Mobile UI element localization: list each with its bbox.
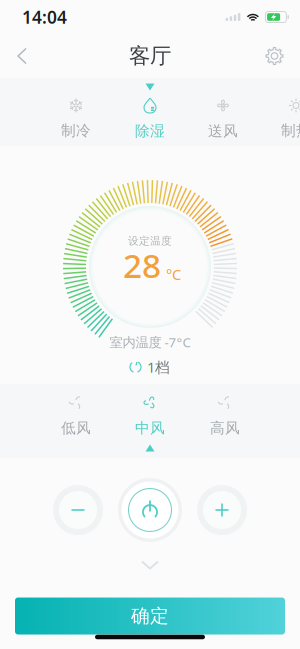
button[interactable]: 制冷 — [41, 93, 111, 145]
button[interactable]: 1档 — [122, 352, 178, 382]
button[interactable]: Decrease temperature — [50, 482, 106, 538]
button[interactable]: 低风 — [41, 390, 111, 442]
staticText: 制热 — [281, 121, 300, 139]
staticText: 低风 — [61, 419, 91, 437]
button[interactable]: 中风 — [115, 390, 185, 442]
button[interactable]: 送风 — [188, 93, 258, 145]
staticText: 14:04 — [22, 5, 67, 28]
staticText: °C — [166, 265, 181, 284]
button[interactable]: 高风 — [190, 390, 260, 442]
button[interactable]: Collapse — [114, 550, 186, 579]
button[interactable]: 制热 — [261, 93, 300, 145]
button[interactable]: Settings — [247, 34, 300, 77]
button[interactable]: Power — [116, 476, 184, 544]
button[interactable]: Back — [0, 34, 46, 77]
staticText: 设定温度 — [128, 234, 172, 247]
staticText: 客厅 — [129, 43, 171, 69]
staticText: 高风 — [210, 419, 240, 437]
staticText: 1档 — [147, 357, 170, 377]
staticText: 室内温度 -7°C — [109, 333, 190, 351]
button[interactable]: 确定 — [15, 597, 285, 634]
button[interactable]: 除湿 — [115, 93, 185, 145]
staticText: 28 — [123, 243, 161, 287]
staticText: 中风 — [135, 419, 165, 437]
staticText: 确定 — [131, 604, 169, 627]
staticText: 除湿 — [135, 122, 165, 140]
staticText: 送风 — [208, 122, 238, 140]
button[interactable]: Increase temperature — [194, 482, 250, 538]
staticText: 制冷 — [61, 121, 91, 139]
